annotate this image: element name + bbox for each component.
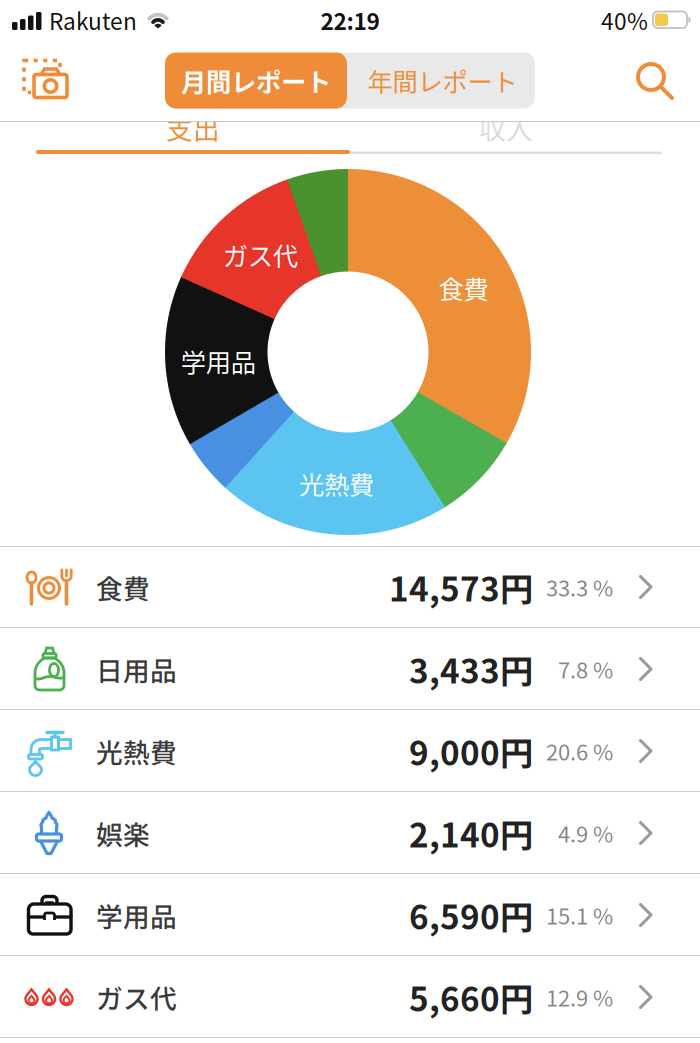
- staticText: 光熱費: [299, 465, 374, 502]
- staticText: 40%: [601, 4, 648, 36]
- button[interactable]: 日用品: [0, 628, 700, 710]
- staticText: 7.8 %: [558, 653, 613, 685]
- staticText: 収入: [479, 108, 533, 147]
- staticText: 6,590円: [409, 891, 533, 939]
- button[interactable]: ガス代: [0, 956, 700, 1038]
- staticText: 22:19: [320, 4, 379, 36]
- staticText: 光熱費: [96, 732, 177, 770]
- staticText: 支出: [166, 108, 220, 147]
- button[interactable]: 食費: [0, 546, 700, 628]
- staticText: 12.9 %: [546, 981, 613, 1013]
- button[interactable]: 娯楽: [0, 792, 700, 874]
- staticText: 年間レポート: [367, 62, 517, 99]
- staticText: 食費: [438, 270, 488, 306]
- staticText: 日用品: [96, 650, 177, 688]
- staticText: 学用品: [181, 343, 256, 379]
- button[interactable]: 学用品: [0, 874, 700, 956]
- staticText: 食費: [96, 568, 150, 606]
- staticText: 4.9 %: [558, 817, 613, 849]
- staticText: 5,660円: [409, 973, 533, 1021]
- staticText: 月間レポート: [181, 62, 331, 99]
- button[interactable]: 支出: [36, 120, 350, 153]
- button[interactable]: Search: [635, 61, 700, 100]
- staticText: 娯楽: [96, 814, 150, 852]
- staticText: 20.6 %: [546, 735, 613, 767]
- staticText: 14,573円: [389, 563, 533, 611]
- staticText: Rakuten: [49, 4, 137, 36]
- staticText: 9,000円: [409, 727, 533, 775]
- button[interactable]: 光熱費: [0, 710, 700, 792]
- staticText: ガス代: [223, 236, 298, 273]
- button[interactable]: 年間レポート: [350, 52, 535, 108]
- staticText: 33.3 %: [546, 571, 613, 603]
- button[interactable]: Scan receipt: [0, 58, 72, 102]
- button[interactable]: 収入: [350, 120, 662, 153]
- staticText: 3,433円: [409, 645, 533, 693]
- staticText: 学用品: [96, 896, 177, 934]
- staticText: 15.1 %: [546, 899, 613, 931]
- staticText: ガス代: [96, 978, 177, 1016]
- button[interactable]: 月間レポート: [165, 52, 347, 108]
- staticText: 2,140円: [409, 809, 533, 857]
